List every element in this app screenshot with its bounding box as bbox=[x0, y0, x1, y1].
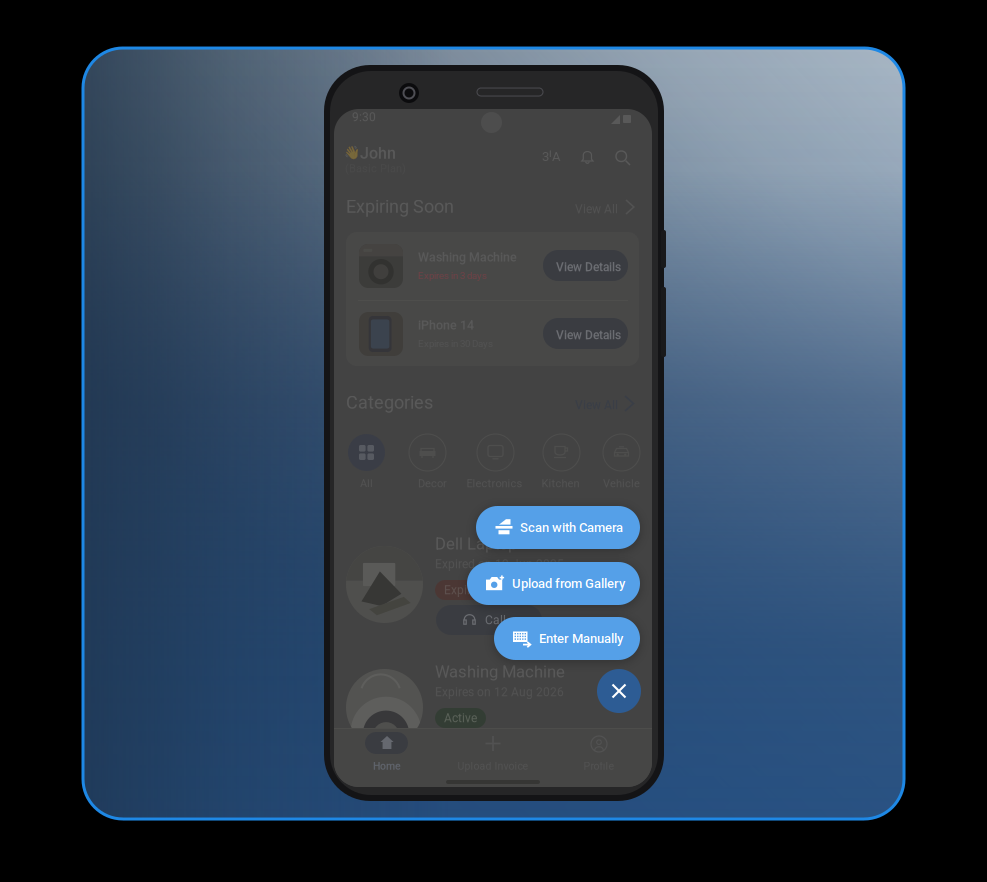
staticText: View Details bbox=[556, 260, 621, 274]
staticText: 👋 bbox=[344, 145, 360, 160]
staticText: Expired bbox=[444, 583, 484, 597]
staticText: John bbox=[360, 144, 396, 163]
staticText: View All bbox=[575, 398, 618, 412]
button[interactable]: Profile bbox=[546, 730, 652, 787]
staticText: Expires in 3 days bbox=[418, 270, 487, 281]
button[interactable]: Home bbox=[334, 730, 440, 787]
staticText: Enter Manually bbox=[539, 631, 623, 646]
staticText: Decor bbox=[418, 477, 447, 490]
button[interactable]: Upload from Gallery bbox=[467, 562, 640, 605]
staticText: Scan with Camera bbox=[520, 520, 623, 535]
staticText: Expires in 30 Days bbox=[418, 338, 493, 349]
staticText: Upload from Gallery bbox=[512, 576, 625, 591]
staticText: Kitchen bbox=[541, 477, 579, 490]
staticText: Categories bbox=[346, 392, 433, 413]
button[interactable]: Upload Invoice bbox=[440, 730, 546, 787]
staticText: Upload Invoice bbox=[457, 760, 528, 772]
button[interactable]: Enter Manually bbox=[494, 617, 640, 660]
staticText: View Details bbox=[556, 328, 621, 342]
staticText: Washing Machine bbox=[435, 662, 565, 681]
staticText: Call bbox=[485, 613, 506, 627]
staticText: Expires on 12 Aug 2026 bbox=[435, 685, 564, 699]
staticText: Active bbox=[444, 711, 477, 725]
staticText: Expiring Soon bbox=[346, 196, 454, 217]
staticText: View All bbox=[575, 202, 618, 216]
staticText: iPhone 14 bbox=[418, 318, 474, 332]
button[interactable]: Scan with Camera bbox=[476, 506, 640, 549]
staticText: 3ᴵA bbox=[542, 149, 560, 164]
staticText: Vehicle bbox=[603, 477, 640, 490]
staticText: Electronics bbox=[466, 477, 522, 490]
button[interactable]: Close menu bbox=[597, 669, 641, 713]
staticText: Profile bbox=[583, 760, 614, 772]
staticText: All bbox=[360, 477, 373, 490]
staticText: Expired on 12 Jun 2025 bbox=[435, 557, 564, 571]
staticText: Washing Machine bbox=[418, 250, 517, 264]
staticText: Home bbox=[373, 760, 401, 772]
staticText: 9:30 bbox=[352, 110, 376, 124]
staticText: Dell Laptop bbox=[435, 534, 517, 553]
